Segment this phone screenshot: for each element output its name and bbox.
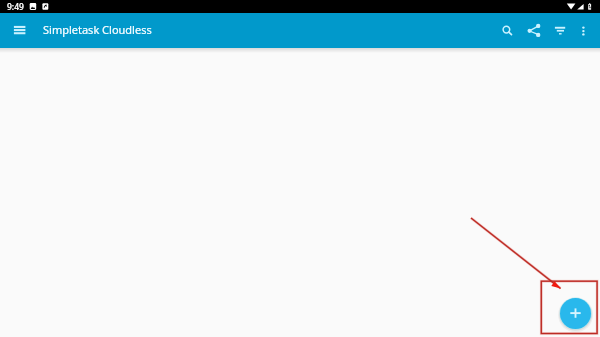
button[interactable]: More options (574, 21, 596, 43)
staticText: 9:49 (7, 1, 24, 13)
button[interactable]: Add task (560, 298, 591, 329)
button[interactable]: Share (523, 21, 545, 43)
staticText: Simpletask Cloudless (43, 22, 152, 37)
button[interactable]: Open navigation drawer (7, 20, 32, 45)
button[interactable]: Filter (550, 21, 572, 43)
button[interactable]: Search (498, 21, 520, 43)
